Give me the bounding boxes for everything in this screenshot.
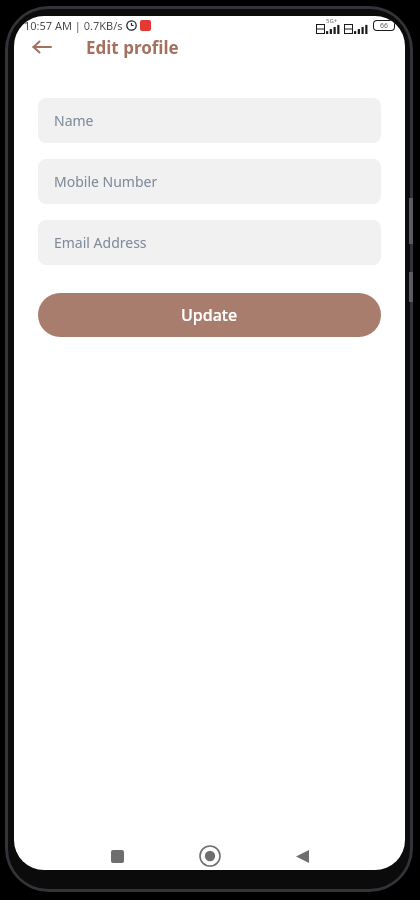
button[interactable]: Mobile Number	[38, 159, 381, 204]
button[interactable]: Back	[26, 34, 56, 60]
staticText: Update	[181, 304, 238, 326]
button[interactable]: Home	[195, 842, 225, 870]
button[interactable]: Email Address	[38, 220, 381, 265]
staticText: 5G+	[326, 17, 338, 25]
staticText: Email Address	[54, 233, 147, 252]
button[interactable]: Recents	[102, 842, 132, 870]
staticText: Name	[54, 111, 94, 130]
staticText: 66	[380, 21, 389, 30]
staticText: Mobile Number	[54, 172, 158, 191]
staticText: 10:57 AM | 0.7KB/s	[24, 18, 123, 33]
button[interactable]: Update	[38, 293, 381, 337]
button[interactable]: Name	[38, 98, 381, 143]
button[interactable]: Back	[287, 842, 317, 870]
staticText: Edit profile	[86, 36, 179, 59]
